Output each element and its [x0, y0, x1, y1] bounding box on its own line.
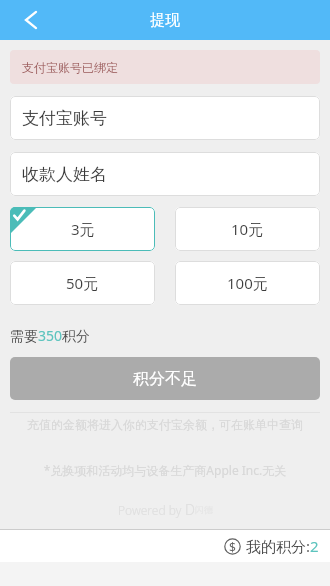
button[interactable]: $: [224, 536, 319, 556]
staticText: 10元: [231, 219, 264, 239]
staticText: 需要350积分: [10, 326, 91, 345]
staticText: 充值的金额将进入你的支付宝余额，可在账单中查询: [0, 417, 330, 432]
staticText: 3元: [71, 219, 95, 239]
staticText: D: [185, 500, 195, 519]
staticText: 我的积分:2: [246, 536, 319, 556]
staticText: 提现: [150, 11, 180, 30]
staticText: *兑换项和活动均与设备生产商Apple Inc.无关: [0, 462, 330, 478]
staticText: 支付宝账号: [22, 108, 107, 129]
staticText: 50元: [66, 273, 99, 293]
staticText: 收款人姓名: [22, 164, 107, 185]
button[interactable]: 3元: [10, 207, 155, 251]
staticText: 闪德: [195, 504, 213, 515]
button[interactable]: 收款人姓名: [10, 152, 320, 196]
button[interactable]: 支付宝账号: [10, 96, 320, 140]
staticText: $: [229, 539, 236, 555]
staticText: 积分不足: [133, 369, 197, 389]
staticText: 100元: [227, 273, 268, 293]
button[interactable]: 10元: [175, 207, 320, 251]
button[interactable]: 积分不足: [10, 357, 320, 400]
staticText: 支付宝账号已绑定: [22, 60, 118, 75]
staticText: Powered by: [118, 502, 185, 518]
button[interactable]: 100元: [175, 261, 320, 305]
button[interactable]: Back: [0, 0, 52, 40]
button[interactable]: 50元: [10, 261, 155, 305]
